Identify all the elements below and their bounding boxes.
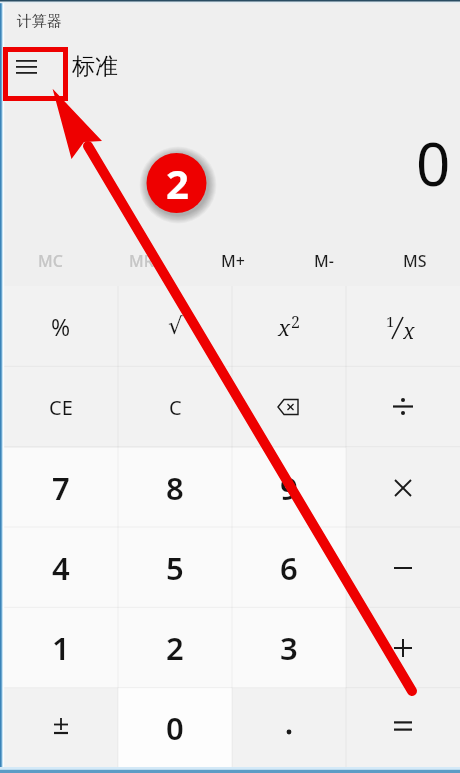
staticText: 7 — [52, 467, 70, 509]
staticText: 2 — [291, 311, 300, 333]
staticText: 2 — [166, 627, 184, 669]
staticText: 0 — [416, 122, 451, 204]
staticText: 4 — [52, 547, 70, 589]
staticText: 3 — [280, 627, 298, 669]
button[interactable]: 7 — [4, 448, 118, 528]
staticText: 9 — [280, 467, 298, 509]
staticText: 1 — [52, 627, 70, 669]
button[interactable]: MC — [4, 226, 96, 286]
button[interactable]: Plus — [346, 608, 460, 688]
button[interactable]: CE — [4, 367, 118, 448]
button[interactable]: Divide — [346, 367, 460, 448]
button[interactable]: 3 — [232, 608, 346, 688]
button[interactable]: 2 — [118, 608, 232, 688]
button[interactable]: Menu — [4, 45, 48, 87]
button[interactable]: x squared — [232, 286, 346, 367]
staticText: M+ — [221, 250, 245, 272]
button[interactable]: M- — [278, 226, 369, 286]
button[interactable]: √ — [118, 286, 232, 367]
staticText: x — [278, 312, 291, 342]
button[interactable]: Plus minus — [4, 688, 118, 768]
button[interactable]: 6 — [232, 528, 346, 608]
staticText: 8 — [166, 467, 184, 509]
staticText: C — [169, 394, 182, 421]
staticText: M- — [314, 250, 334, 272]
staticText: MC — [38, 250, 63, 272]
button[interactable]: Equals — [346, 688, 460, 768]
staticText: 标准 — [72, 52, 118, 81]
button[interactable]: Decimal point — [232, 688, 346, 768]
button[interactable]: 5 — [118, 528, 232, 608]
button[interactable]: Backspace — [232, 367, 346, 448]
button[interactable]: Minus — [346, 528, 460, 608]
staticText: 6 — [280, 547, 298, 589]
staticText: 0 — [166, 707, 184, 749]
button[interactable]: 1 — [4, 608, 118, 688]
button[interactable]: 9 — [232, 448, 346, 528]
button[interactable]: one over x — [346, 286, 460, 367]
staticText: 5 — [166, 547, 184, 589]
staticText: 2 — [166, 156, 189, 210]
button[interactable]: MS — [369, 226, 460, 286]
staticText: CE — [49, 394, 73, 421]
button[interactable]: 8 — [118, 448, 232, 528]
button[interactable]: M+ — [187, 226, 278, 286]
button[interactable]: MR — [96, 226, 187, 286]
staticText: MR — [129, 250, 154, 272]
button[interactable]: Multiply — [346, 448, 460, 528]
staticText: x — [403, 317, 415, 343]
button[interactable]: 4 — [4, 528, 118, 608]
staticText: 计算器 — [17, 12, 62, 31]
staticText: MS — [403, 250, 427, 272]
button[interactable]: % — [4, 286, 118, 367]
button[interactable]: 0 — [118, 688, 232, 768]
button[interactable]: C — [118, 367, 232, 448]
staticText: 1 — [386, 311, 395, 331]
staticText: % — [51, 311, 71, 342]
staticText: √ — [168, 313, 183, 340]
